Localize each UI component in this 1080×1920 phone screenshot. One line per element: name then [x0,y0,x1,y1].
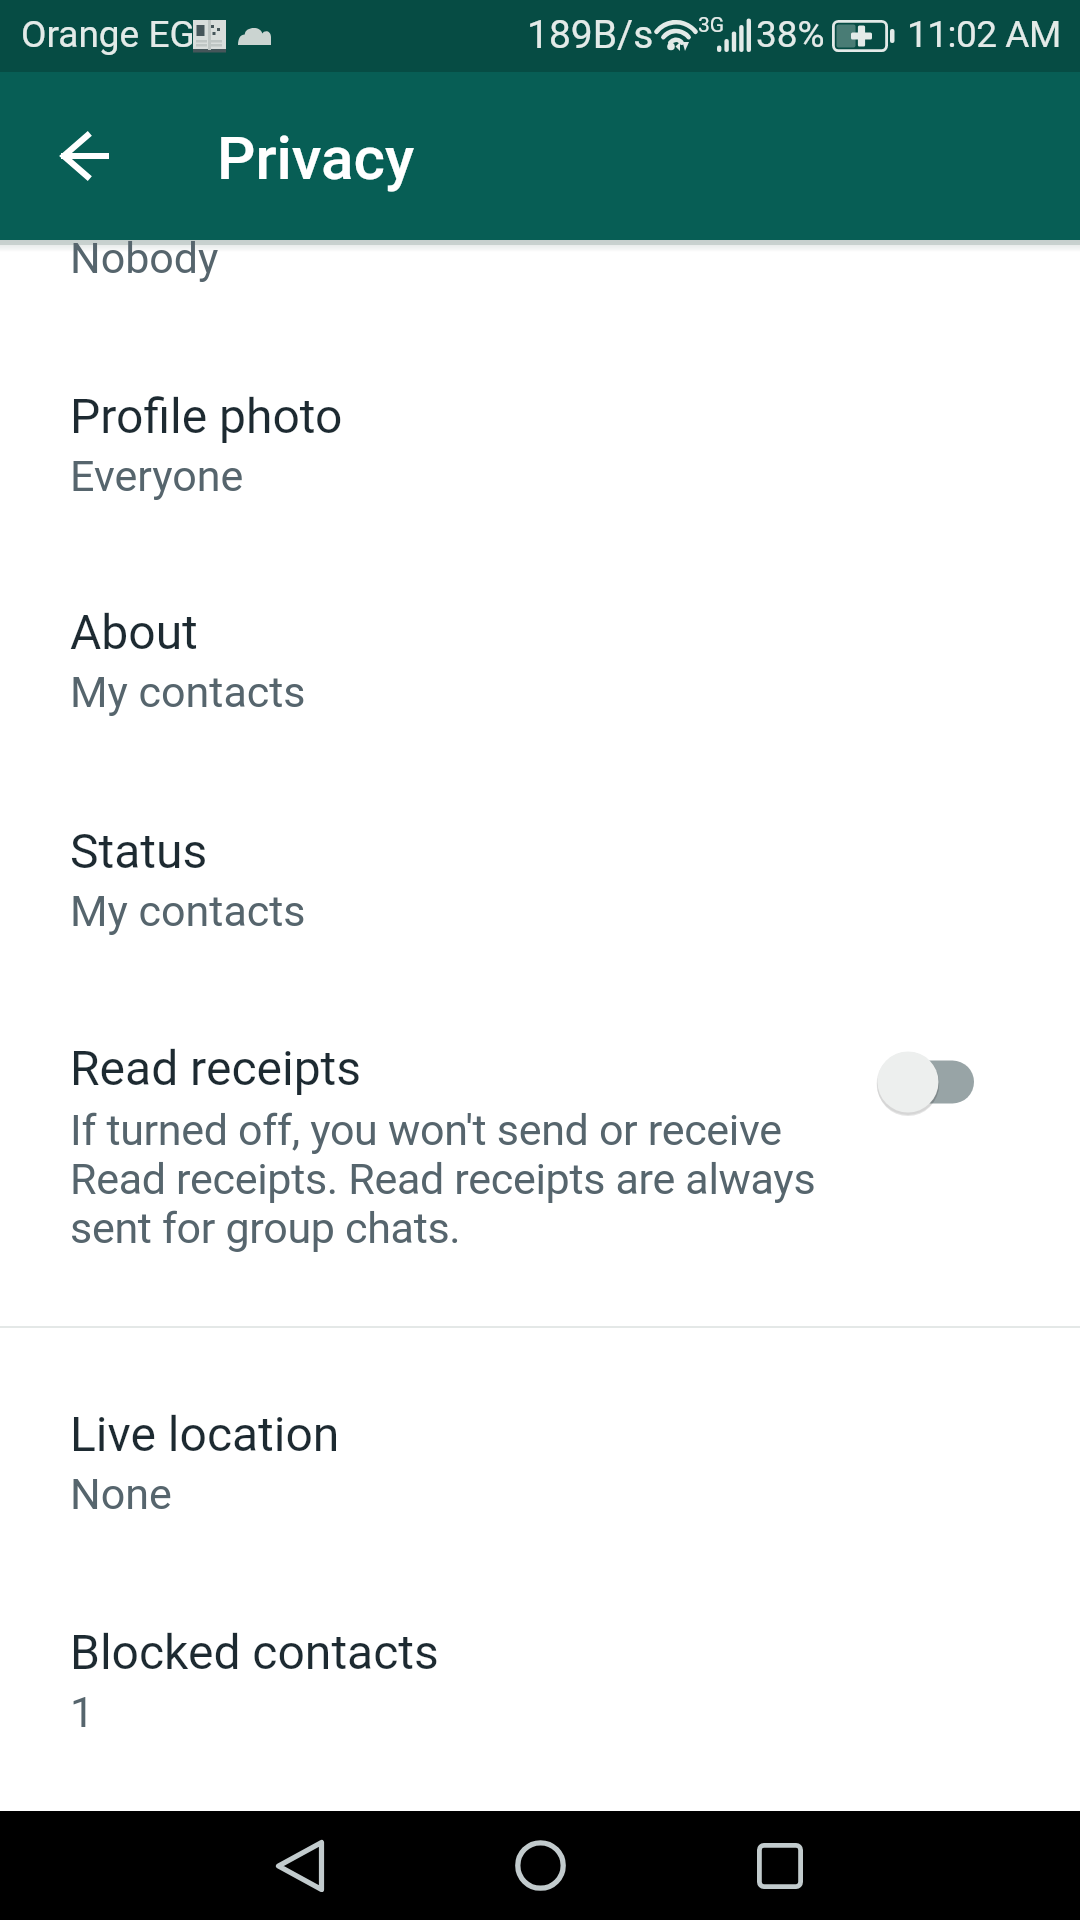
staticText: Read receipts [70,1040,362,1096]
button[interactable]: Read receipts toggle [877,1042,997,1122]
staticText: My contacts [70,667,306,717]
staticText: About [70,604,198,660]
staticText: Blocked contacts [70,1624,439,1680]
button[interactable]: Profile photo [0,346,1080,546]
staticText: 3G [698,13,725,38]
button[interactable]: Live location [0,1364,1080,1564]
staticText: Live location [70,1406,340,1462]
staticText: 189B/s [527,12,654,58]
button[interactable]: About [0,562,1080,762]
staticText: Nobody [70,233,219,283]
button[interactable]: Read receipts [0,994,1080,1294]
button[interactable]: Back [230,1811,370,1920]
button[interactable]: Nobody [0,233,1080,343]
staticText: 11:02 AM [907,13,1061,56]
staticText: None [70,1469,172,1519]
button[interactable]: Status [0,781,1080,981]
staticText: Orange EG [21,13,195,56]
button[interactable]: Back [36,108,132,204]
staticText: If turned off, you won't send or receive… [70,1105,830,1253]
staticText: My contacts [70,886,306,936]
staticText: Status [70,823,208,879]
staticText: Profile photo [70,388,343,444]
staticText: Everyone [70,451,244,501]
button[interactable]: Recent apps [710,1811,850,1920]
button[interactable]: Blocked contacts [0,1582,1080,1782]
staticText: Privacy [217,123,415,193]
button[interactable]: Home [470,1811,610,1920]
staticText: 38% [756,13,825,56]
staticText: 1 [70,1687,95,1737]
